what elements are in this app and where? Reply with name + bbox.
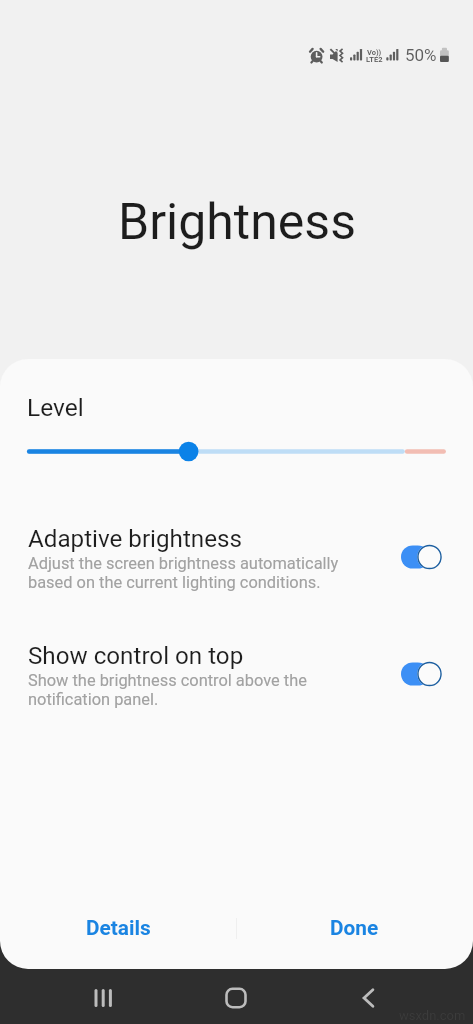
button[interactable]: Details [0,901,236,955]
staticText: Show the brightness control above the no… [28,671,307,709]
button[interactable]: Home [157,969,315,1024]
staticText: Brightness [118,193,356,252]
button[interactable]: Back [315,969,473,1024]
staticText: 50% [405,45,437,65]
staticText: Adaptive brightness [28,525,242,553]
staticText: Done [330,916,379,940]
button[interactable]: Toggle on [398,542,446,572]
button[interactable]: Recent apps [0,969,157,1024]
button[interactable]: Adaptive brightness [0,524,473,598]
staticText: Show control on top [28,642,244,670]
staticText: LTE2 [366,55,383,64]
button[interactable]: Brightness level [0,438,473,465]
button[interactable]: Done [236,901,473,955]
staticText: Level [27,393,84,422]
staticText: Vo)) [367,48,382,57]
staticText: Details [86,916,151,940]
staticText: wsxdn.com [399,1008,466,1023]
button[interactable]: Toggle on [398,659,446,689]
button[interactable]: Show control on top [0,641,473,715]
staticText: Adjust the screen brightness automatical… [28,554,339,592]
